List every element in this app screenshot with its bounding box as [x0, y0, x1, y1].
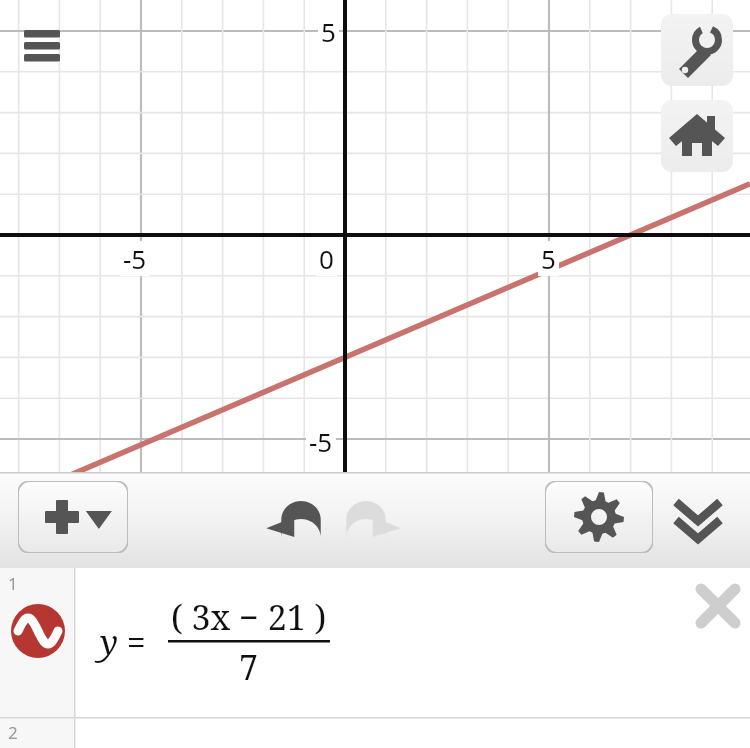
button[interactable]: Redo [337, 496, 395, 540]
button[interactable]: Home [661, 100, 733, 172]
button[interactable]: Undo [272, 496, 330, 540]
staticText: y = [100, 619, 146, 665]
button[interactable]: Graph settings [545, 481, 653, 553]
button[interactable]: Menu [18, 26, 66, 66]
staticText: 7 [239, 644, 259, 690]
button[interactable]: Toggle graph [11, 604, 65, 658]
staticText: 1 [8, 572, 18, 595]
button[interactable]: Collapse [670, 494, 726, 546]
button[interactable]: 1 [0, 568, 750, 717]
staticText: ( 3x − 21 ) [171, 594, 327, 640]
button[interactable]: Delete expression [696, 584, 740, 628]
staticText: 5 [541, 241, 556, 276]
staticText: -5 [309, 424, 333, 459]
button[interactable]: 2 [0, 719, 750, 748]
staticText: 0 [319, 241, 334, 276]
staticText: 2 [8, 721, 18, 744]
button[interactable]: Settings tools [661, 14, 733, 86]
staticText: 5 [321, 14, 336, 49]
button[interactable]: Add expression [18, 481, 128, 553]
staticText: -5 [123, 241, 147, 276]
